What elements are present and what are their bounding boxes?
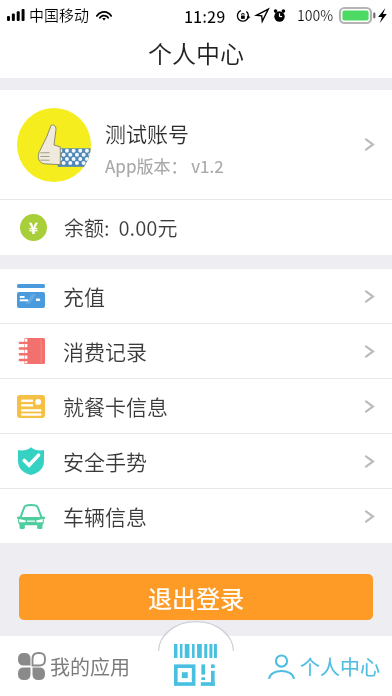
- button[interactable]: 充值: [0, 269, 392, 323]
- staticText: 安全手势: [63, 446, 147, 476]
- button[interactable]: 退出登录: [19, 574, 373, 620]
- staticText: 11:29: [184, 4, 226, 27]
- staticText: 车辆信息: [63, 501, 147, 531]
- staticText: ¥: [29, 217, 38, 239]
- staticText: 我的应用: [50, 652, 130, 681]
- staticText: 消费记录: [63, 336, 147, 366]
- button[interactable]: 安全手势: [0, 434, 392, 488]
- button[interactable]: 车辆信息: [0, 489, 392, 543]
- button[interactable]: 消费记录: [0, 324, 392, 378]
- staticText: App版本： v1.2: [105, 153, 224, 178]
- button[interactable]: Scan QR code: [158, 621, 234, 681]
- button[interactable]: 个人中心: [196, 636, 392, 696]
- staticText: 个人中心: [300, 652, 380, 681]
- staticText: 100%: [297, 5, 334, 25]
- staticText: 就餐卡信息: [63, 391, 168, 421]
- staticText: 充值: [63, 281, 105, 311]
- staticText: 中国移动: [29, 4, 90, 26]
- staticText: 余额: 0.00元: [64, 213, 178, 242]
- staticText: 个人中心: [148, 35, 244, 70]
- staticText: 退出登录: [148, 580, 244, 615]
- button[interactable]: ¥: [0, 200, 392, 255]
- button[interactable]: 测试账号: [0, 90, 392, 199]
- button[interactable]: 就餐卡信息: [0, 379, 392, 433]
- staticText: 测试账号: [105, 118, 189, 148]
- button[interactable]: 我的应用: [0, 636, 196, 696]
